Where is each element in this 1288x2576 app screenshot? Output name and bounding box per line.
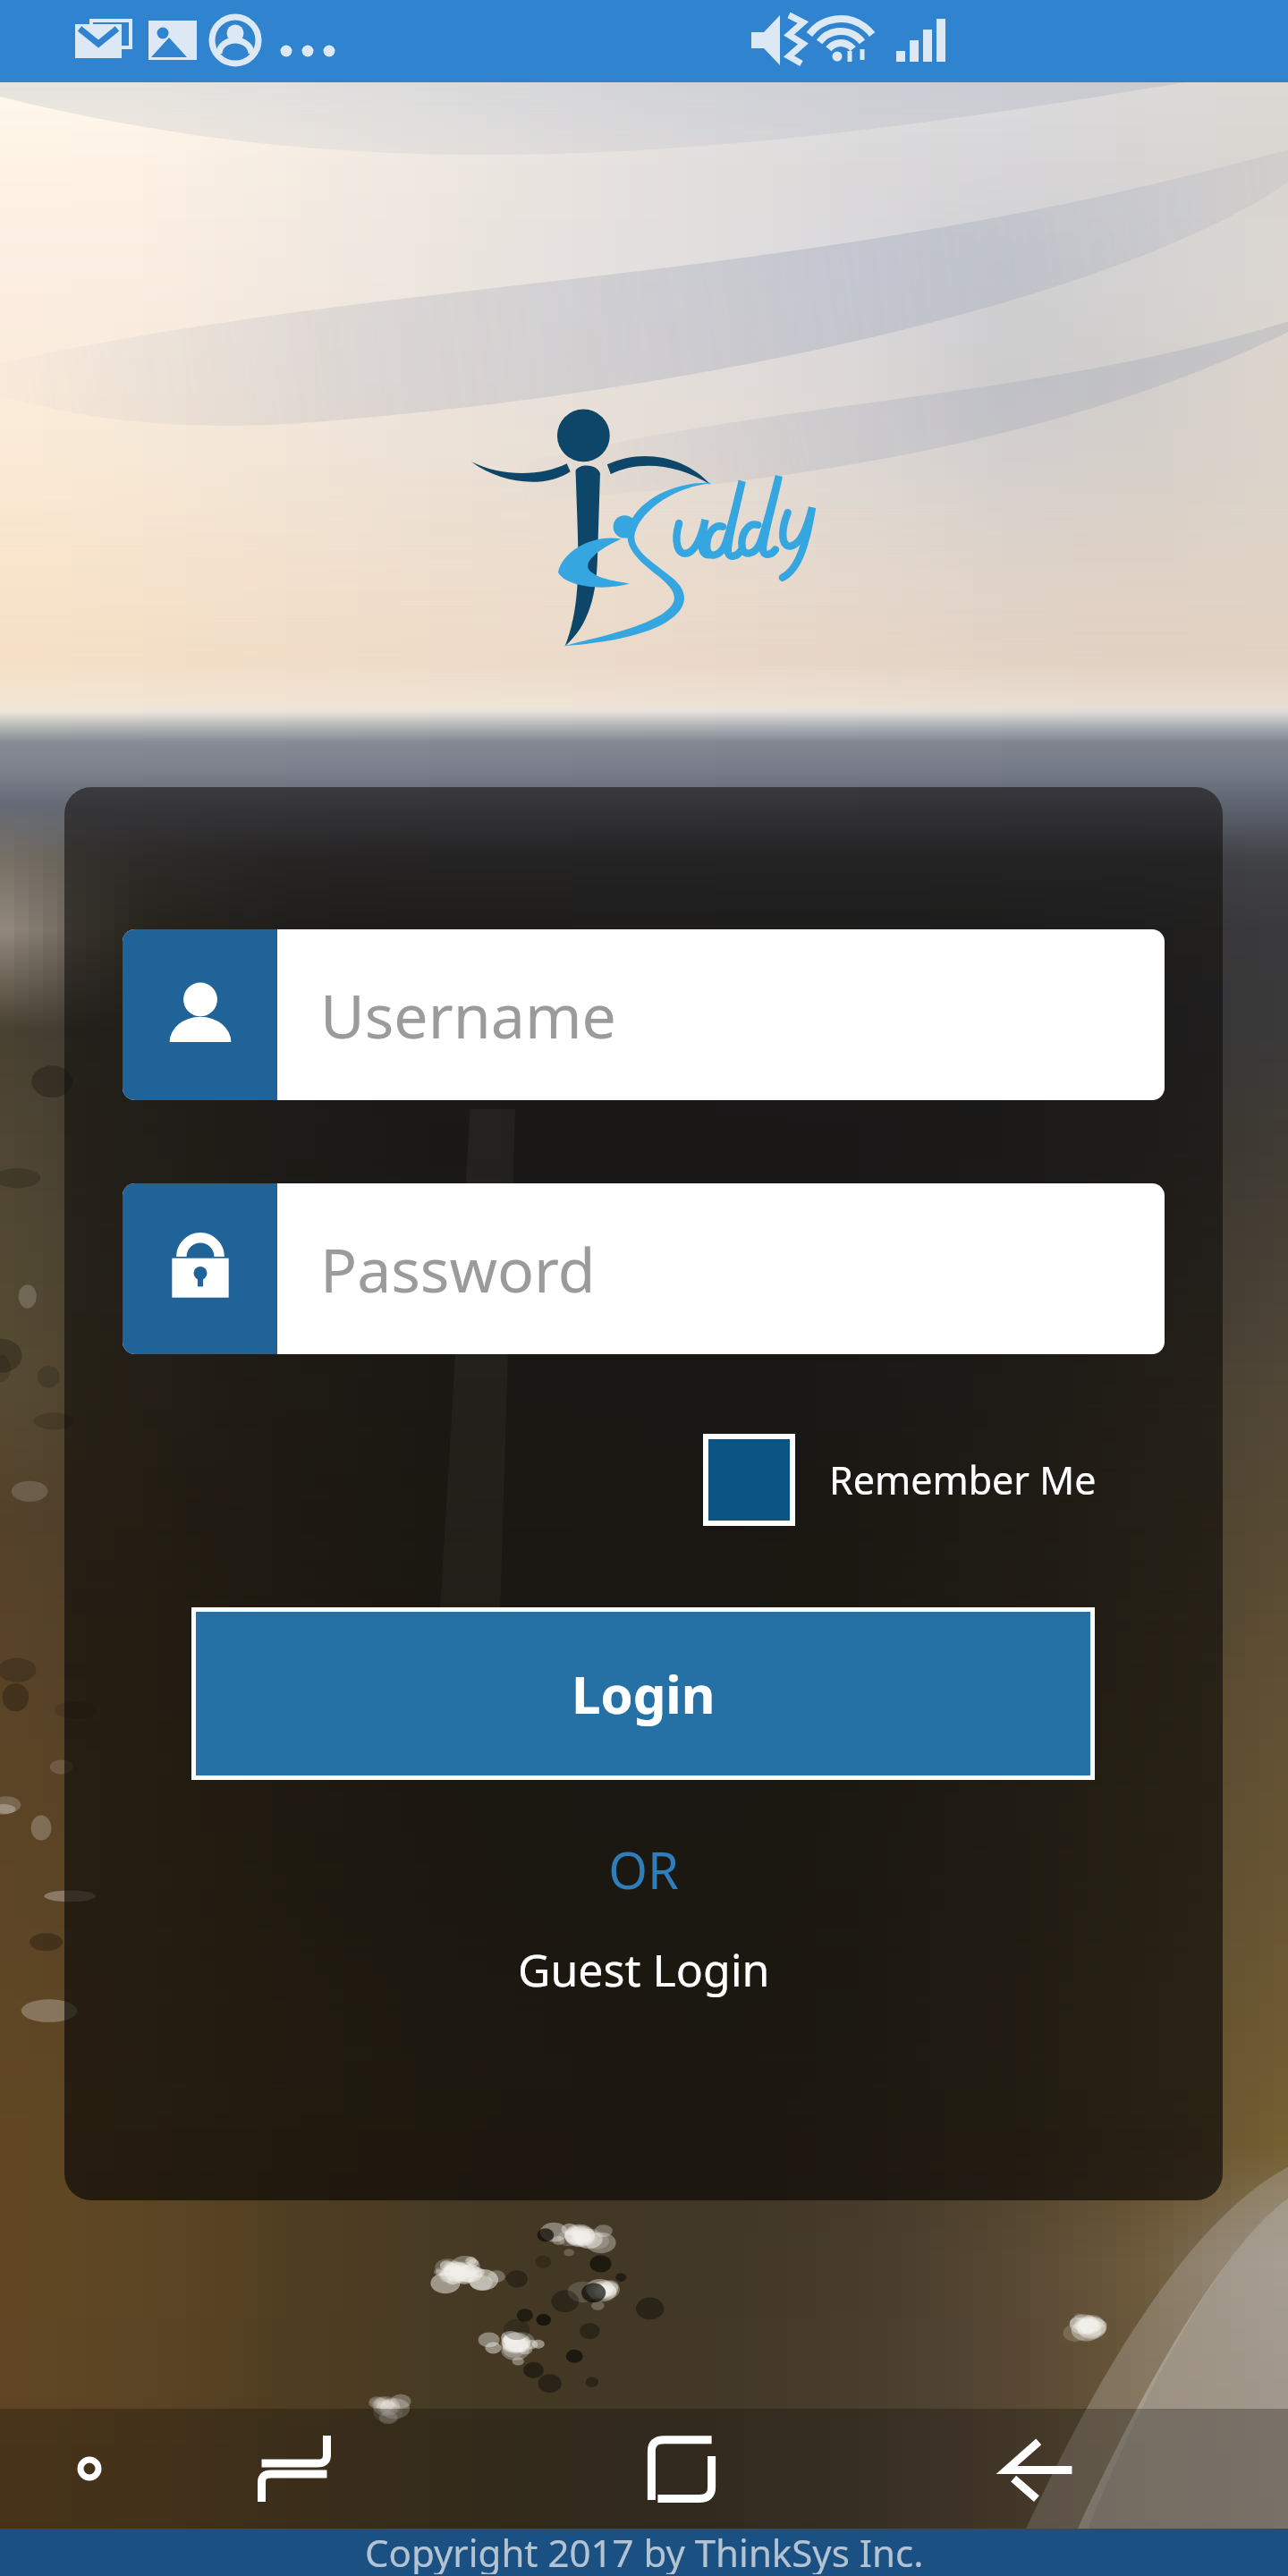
staticText: OR — [64, 1835, 1223, 1903]
button[interactable]: Home — [592, 2409, 771, 2529]
button[interactable]: Show keyboard — [0, 2409, 179, 2529]
button[interactable]: Password — [123, 1183, 1165, 1354]
staticText: Copyright 2017 by ThinkSys Inc. — [365, 2527, 924, 2574]
button[interactable]: Back — [950, 2409, 1129, 2529]
button[interactable]: Recents — [179, 2409, 410, 2529]
staticText: Password — [320, 1227, 596, 1310]
button[interactable]: Remember Me — [696, 1427, 1097, 1533]
button[interactable]: Username — [123, 929, 1165, 1100]
button[interactable]: Guest Login — [64, 1927, 1223, 2012]
staticText: Guest Login — [518, 1939, 770, 2000]
staticText: Remember Me — [829, 1453, 1097, 1506]
staticText: Login — [572, 1658, 716, 1729]
staticText: Username — [320, 973, 616, 1056]
button[interactable]: Login — [196, 1612, 1090, 1775]
